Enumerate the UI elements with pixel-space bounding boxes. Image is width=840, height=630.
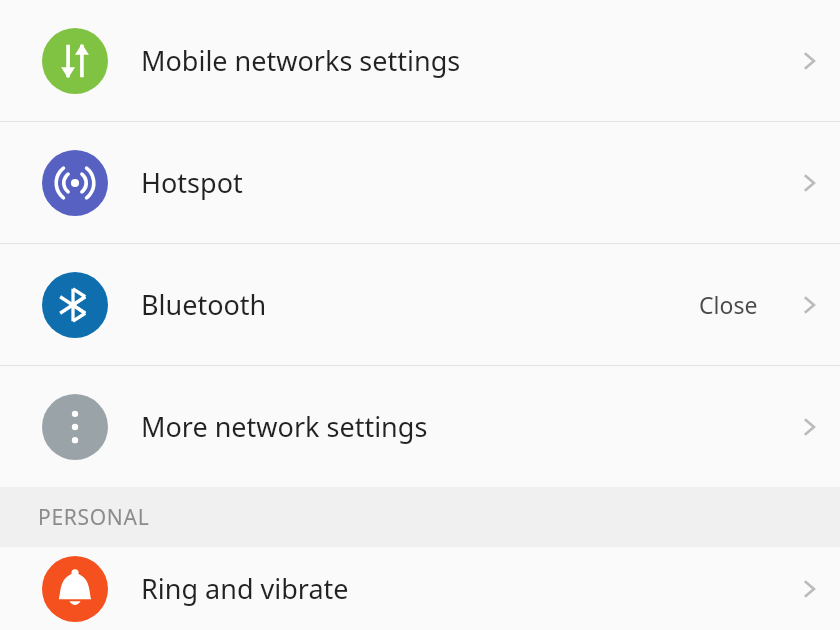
button[interactable]: Open Bluetooth: [778, 244, 840, 365]
staticText: Bluetooth: [141, 286, 699, 323]
button[interactable]: Open More network settings: [778, 366, 840, 487]
button[interactable]: Mobile networks settings: [0, 0, 840, 121]
button[interactable]: Ring and vibrate: [0, 547, 840, 630]
staticText: Close: [699, 289, 758, 320]
button[interactable]: Hotspot: [0, 122, 840, 243]
staticText: Ring and vibrate: [141, 570, 778, 607]
staticText: PERSONAL: [38, 503, 150, 532]
button[interactable]: Bluetooth: [0, 244, 840, 365]
button[interactable]: Open Hotspot: [778, 122, 840, 243]
button[interactable]: Open Mobile networks settings: [778, 0, 840, 121]
staticText: Hotspot: [141, 164, 778, 201]
staticText: More network settings: [141, 408, 778, 445]
button[interactable]: More network settings: [0, 366, 840, 487]
staticText: Mobile networks settings: [141, 42, 778, 79]
button[interactable]: Open Ring and vibrate: [778, 547, 840, 630]
